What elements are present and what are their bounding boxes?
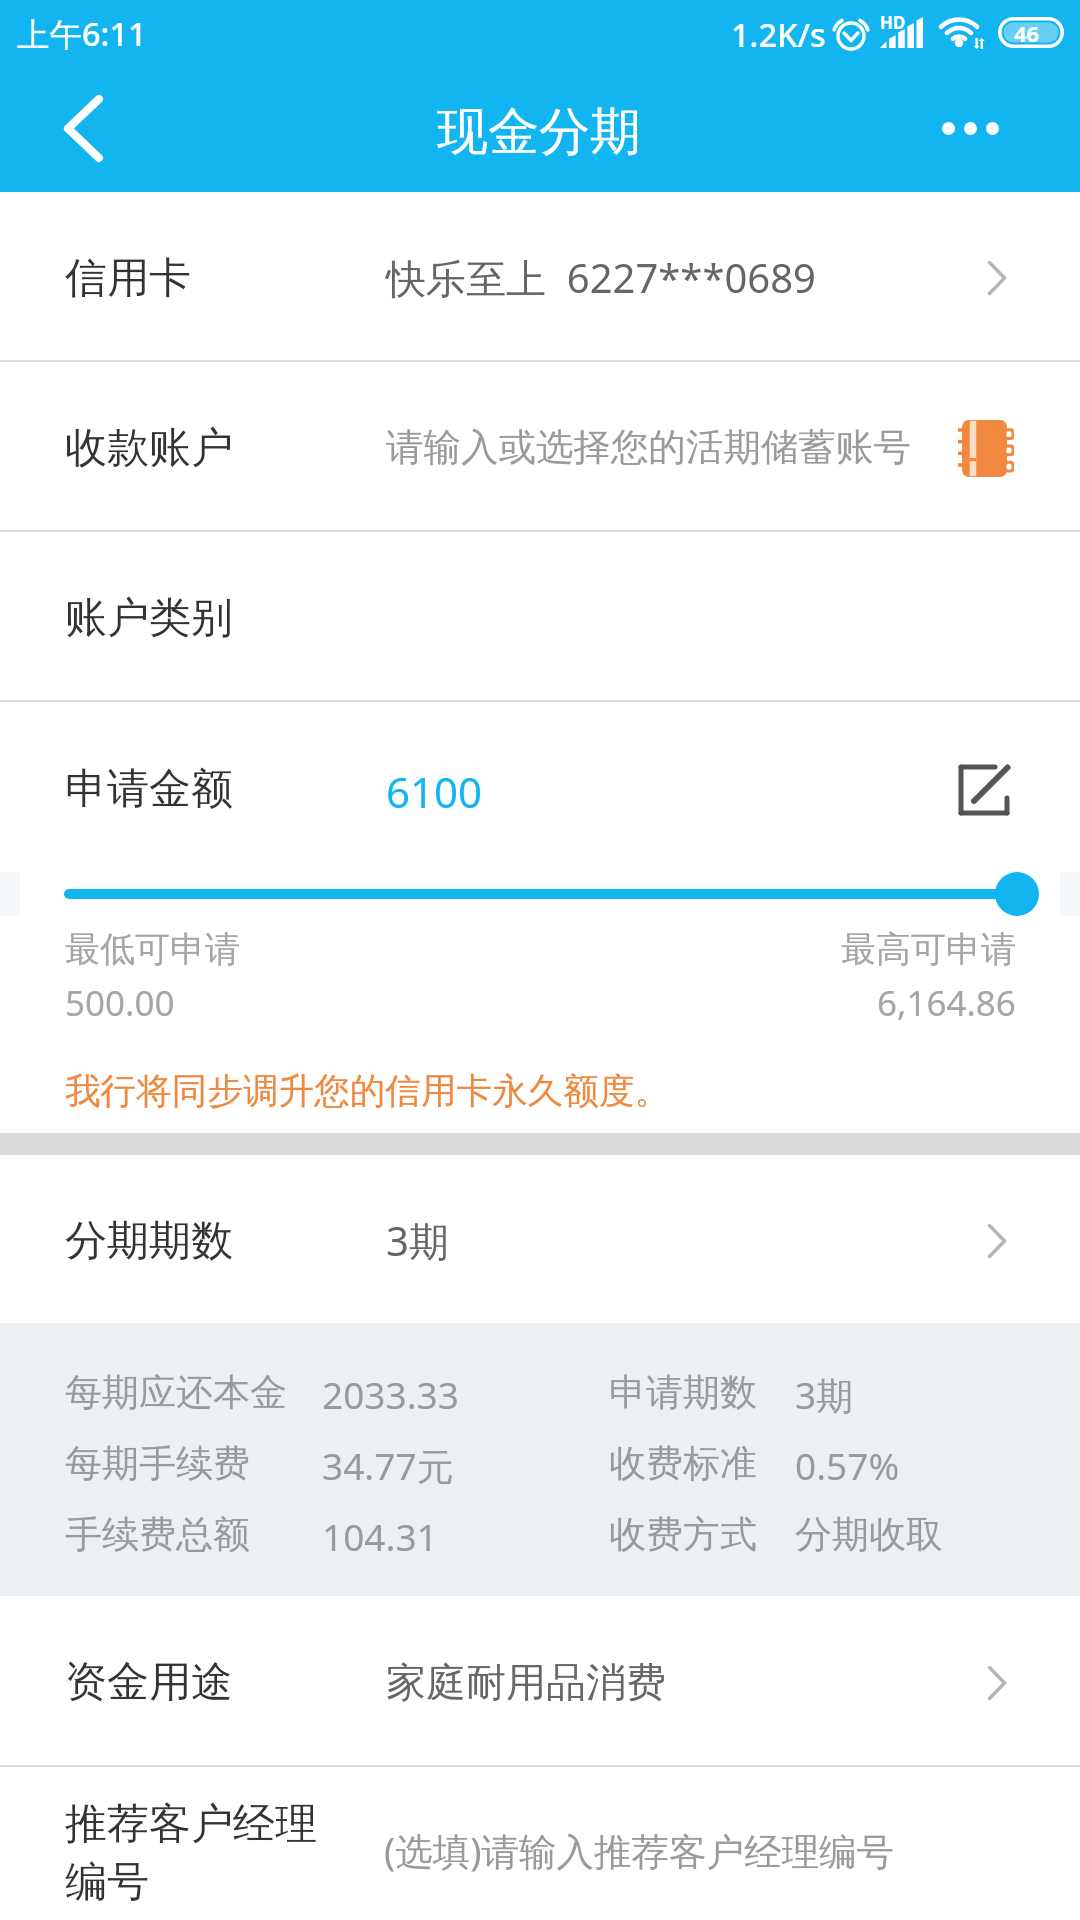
staticText: 每期手续费 <box>65 1440 250 1487</box>
button[interactable]: Back <box>0 72 168 192</box>
staticText: 1.2K/s <box>731 12 826 56</box>
staticText: 信用卡 <box>65 252 191 305</box>
staticText: 编号 <box>65 1856 149 1909</box>
button[interactable]: 收款账户 <box>0 362 1080 530</box>
staticText: 最低可申请 <box>65 927 240 971</box>
button[interactable]: More options <box>920 72 1080 192</box>
button[interactable]: Edit amount <box>955 761 1013 819</box>
staticText: 现金分期 <box>437 100 641 164</box>
staticText: 快乐至上 6227***0689 <box>386 250 816 305</box>
button[interactable]: 信用卡 <box>0 192 1080 360</box>
staticText: 资金用途 <box>65 1656 233 1709</box>
staticText: 最高可申请 <box>841 927 1016 971</box>
staticText: 46 <box>1014 18 1040 48</box>
staticText: 请输入或选择您的活期储蓄账号 <box>386 424 911 471</box>
staticText: 申请金额 <box>65 763 233 816</box>
staticText: HD <box>880 11 906 34</box>
staticText: 2033.33 <box>322 1369 459 1419</box>
staticText: 6100 <box>386 763 483 820</box>
staticText: 500.00 <box>65 979 175 1027</box>
staticText: 3期 <box>386 1213 449 1268</box>
staticText: 上午6:11 <box>17 11 147 55</box>
button[interactable]: 推荐客户经理 <box>0 1767 1080 1920</box>
staticText: 每期应还本金 <box>65 1369 287 1416</box>
staticText: 6,164.86 <box>877 979 1016 1027</box>
staticText: 我行将同步调升您的信用卡永久额度。 <box>65 1069 671 1114</box>
staticText: 104.31 <box>322 1511 438 1561</box>
staticText: (选填)请输入推荐客户经理编号 <box>384 1825 894 1876</box>
staticText: 手续费总额 <box>65 1511 250 1558</box>
staticText: 账户类别 <box>65 592 233 645</box>
button[interactable]: Choose account from address book <box>936 398 1036 498</box>
button[interactable]: 账户类别 <box>0 532 1080 700</box>
staticText: 分期期数 <box>65 1215 233 1268</box>
staticText: 34.77元 <box>322 1440 454 1491</box>
staticText: 收款账户 <box>65 422 233 475</box>
button[interactable]: 分期期数 <box>0 1155 1080 1323</box>
staticText: 分期收取 <box>795 1511 943 1558</box>
staticText: 收费标准 <box>609 1440 757 1487</box>
staticText: 收费方式 <box>609 1511 757 1558</box>
staticText: 家庭耐用品消费 <box>386 1657 666 1707</box>
staticText: 0.57% <box>795 1440 900 1490</box>
staticText: 3期 <box>795 1369 854 1420</box>
staticText: 推荐客户经理 <box>65 1798 317 1851</box>
button[interactable]: 资金用途 <box>0 1596 1080 1765</box>
staticText: 申请期数 <box>609 1369 757 1416</box>
